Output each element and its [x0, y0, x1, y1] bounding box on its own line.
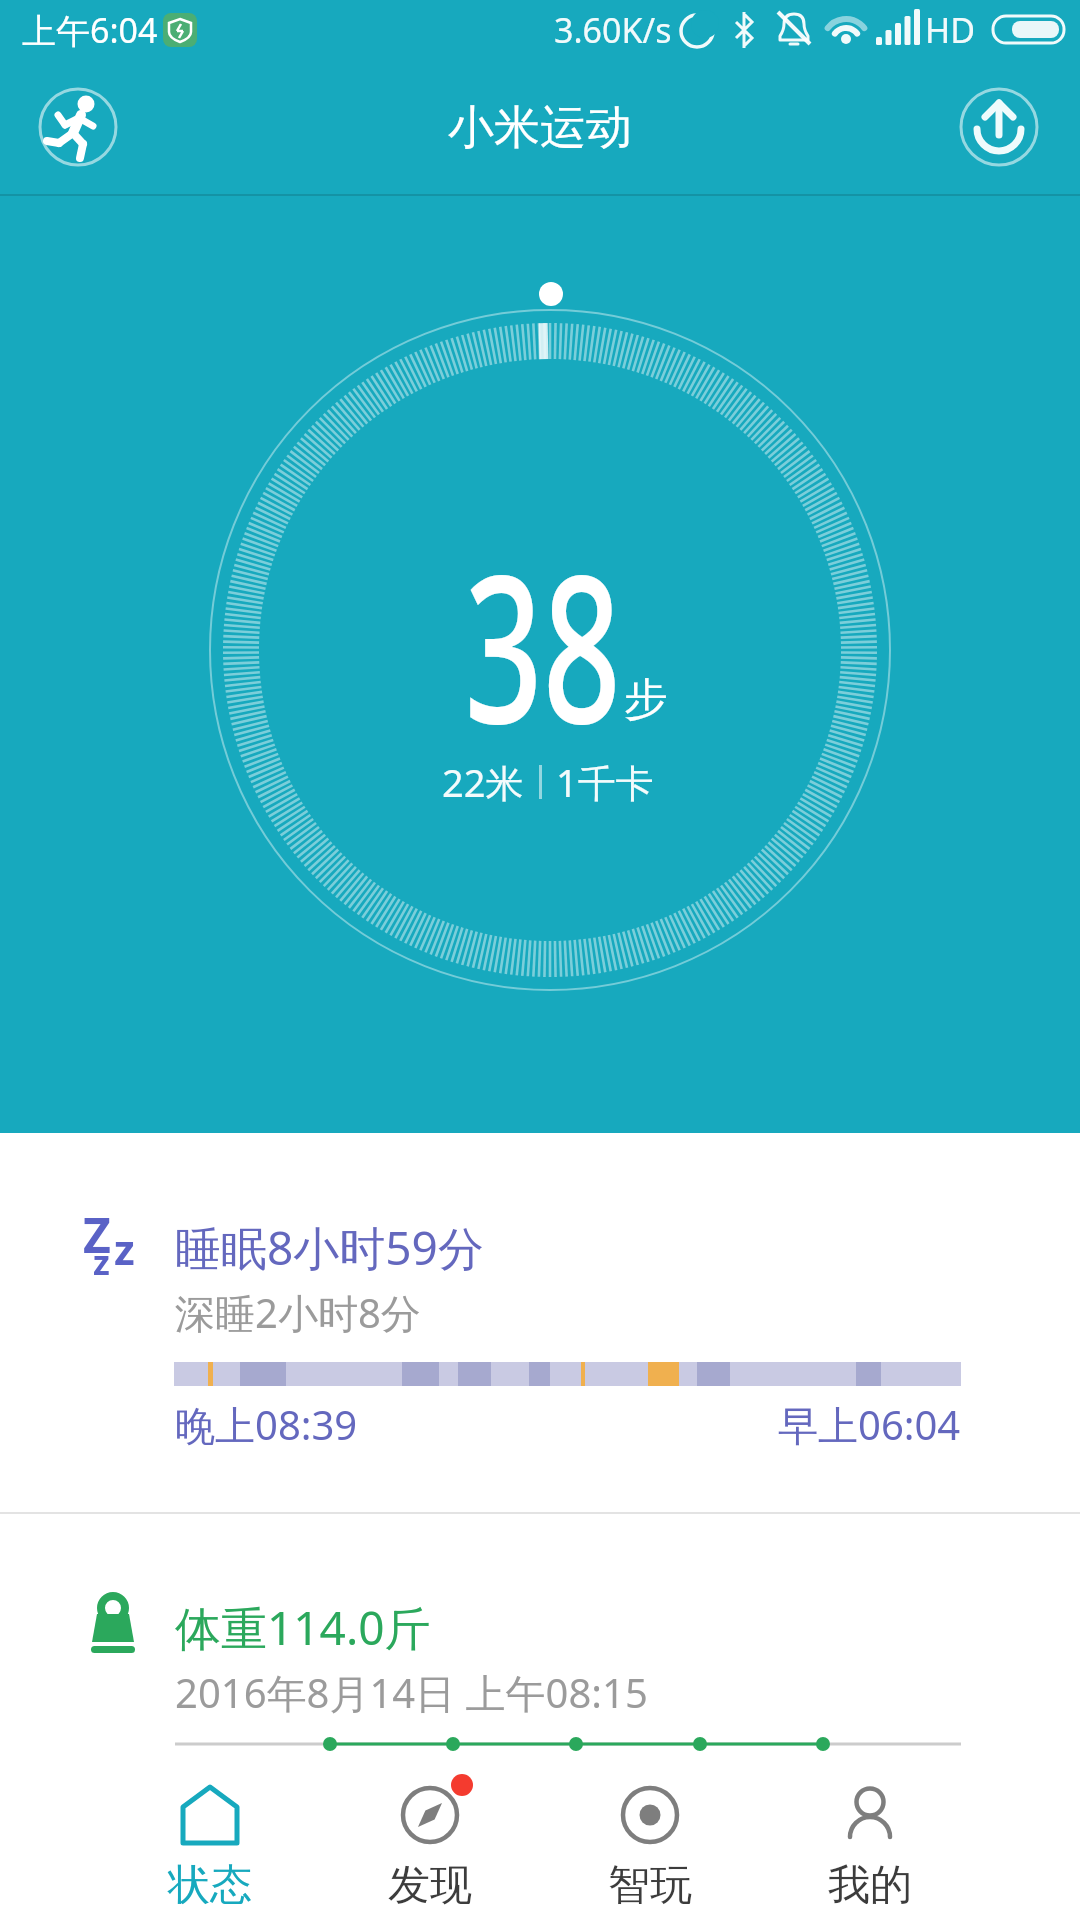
button[interactable]: [0, 1133, 1080, 1513]
staticText: 22米: [442, 756, 524, 808]
staticText: 状态: [168, 1859, 252, 1912]
button[interactable]: 发现: [270, 1764, 540, 1920]
staticText: 38: [465, 505, 621, 783]
button[interactable]: 智玩: [540, 1764, 810, 1920]
staticText: 小米运动: [448, 99, 632, 157]
staticText: 智玩: [608, 1859, 692, 1912]
staticText: 早上06:04: [778, 1397, 961, 1452]
staticText: HD: [925, 7, 976, 53]
button[interactable]: [0, 1514, 1080, 1764]
staticText: 步: [624, 672, 668, 727]
button[interactable]: [959, 87, 1039, 167]
staticText: 1千卡: [556, 756, 654, 808]
button[interactable]: [38, 87, 118, 167]
staticText: 体重114.0斤: [175, 1596, 431, 1659]
staticText: 我的: [828, 1859, 912, 1912]
staticText: 晚上08:39: [175, 1397, 358, 1452]
button[interactable]: 我的: [810, 1764, 1080, 1920]
staticText: 上午6:04: [22, 7, 158, 53]
staticText: z: [93, 1239, 110, 1285]
staticText: 发现: [388, 1859, 472, 1912]
staticText: 2016年8月14日 上午08:15: [175, 1665, 648, 1720]
button[interactable]: 状态: [0, 1764, 270, 1920]
staticText: 3.60K/s: [554, 7, 672, 53]
staticText: 深睡2小时8分: [175, 1285, 421, 1340]
staticText: 睡眠8小时59分: [175, 1216, 484, 1279]
staticText: Z: [83, 1202, 111, 1267]
staticText: z: [114, 1220, 135, 1277]
